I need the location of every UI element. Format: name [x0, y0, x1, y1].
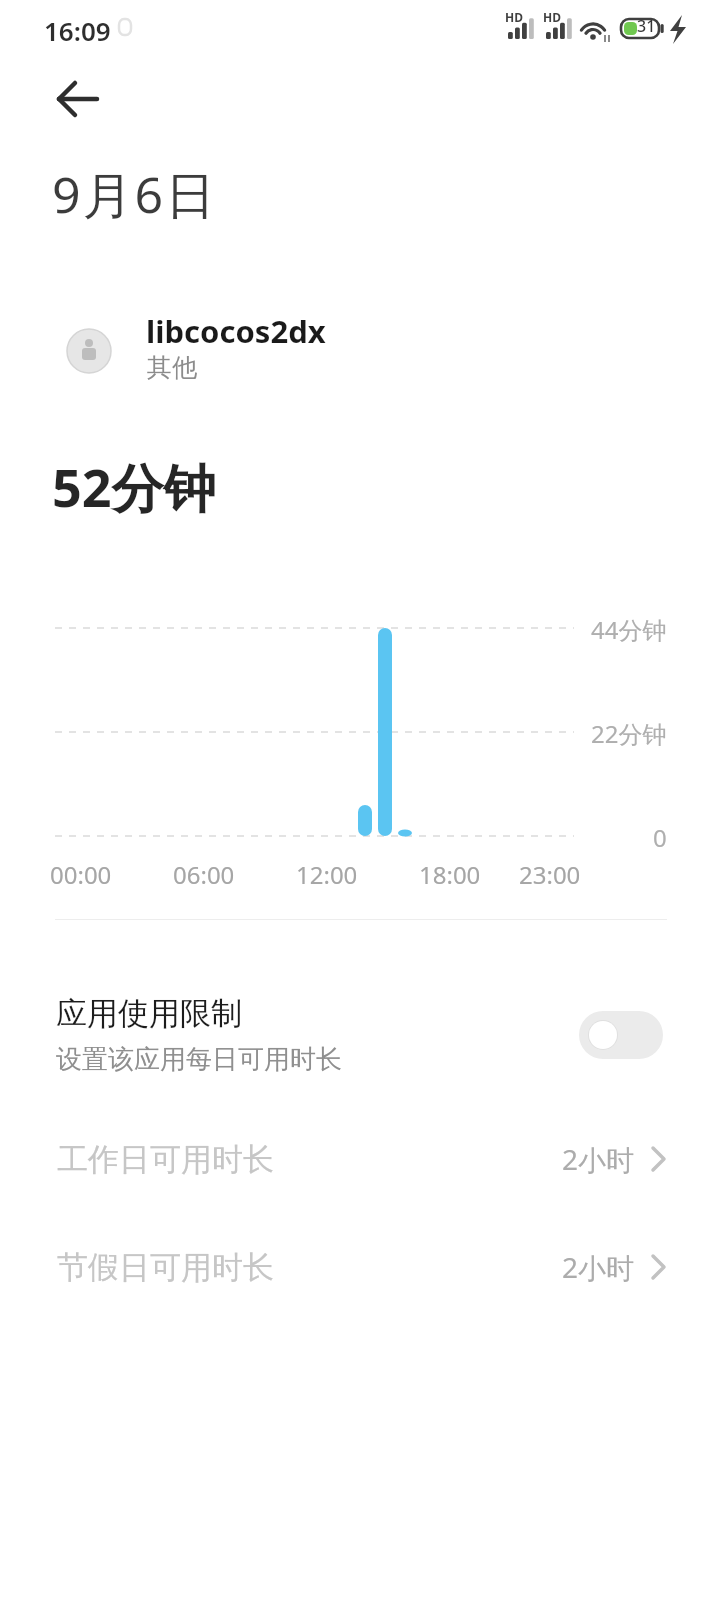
staticText: 2小时 — [562, 1140, 635, 1178]
staticText: HD — [505, 9, 523, 25]
staticText: 节假日可用时长 — [57, 1248, 274, 1287]
button[interactable]: 应用使用限制 — [0, 985, 720, 1085]
staticText: 16:09 — [44, 13, 111, 48]
staticText: 22分钟 — [591, 717, 667, 750]
staticText: 应用使用限制 — [56, 994, 242, 1033]
staticText: 23:00 — [519, 858, 581, 891]
staticText: HD — [543, 9, 561, 25]
staticText: libcocos2dx — [146, 310, 326, 352]
staticText: 18:00 — [419, 858, 481, 891]
staticText: 其他 — [147, 352, 197, 383]
staticText: 工作日可用时长 — [57, 1140, 274, 1179]
staticText: 12:00 — [296, 858, 358, 891]
button[interactable]: 节假日可用时长 — [0, 1236, 720, 1298]
staticText: 06:00 — [173, 858, 235, 891]
button[interactable] — [55, 80, 101, 120]
staticText: 44分钟 — [591, 613, 667, 646]
staticText: 52分钟 — [52, 451, 216, 522]
staticText: 2小时 — [562, 1248, 635, 1286]
staticText: 0 — [653, 821, 667, 854]
staticText: 9月6日 — [52, 160, 218, 228]
button[interactable]: 工作日可用时长 — [0, 1128, 720, 1190]
staticText: 设置该应用每日可用时长 — [56, 1043, 342, 1076]
staticText: 00:00 — [50, 858, 112, 891]
staticText: 31 — [637, 15, 656, 37]
